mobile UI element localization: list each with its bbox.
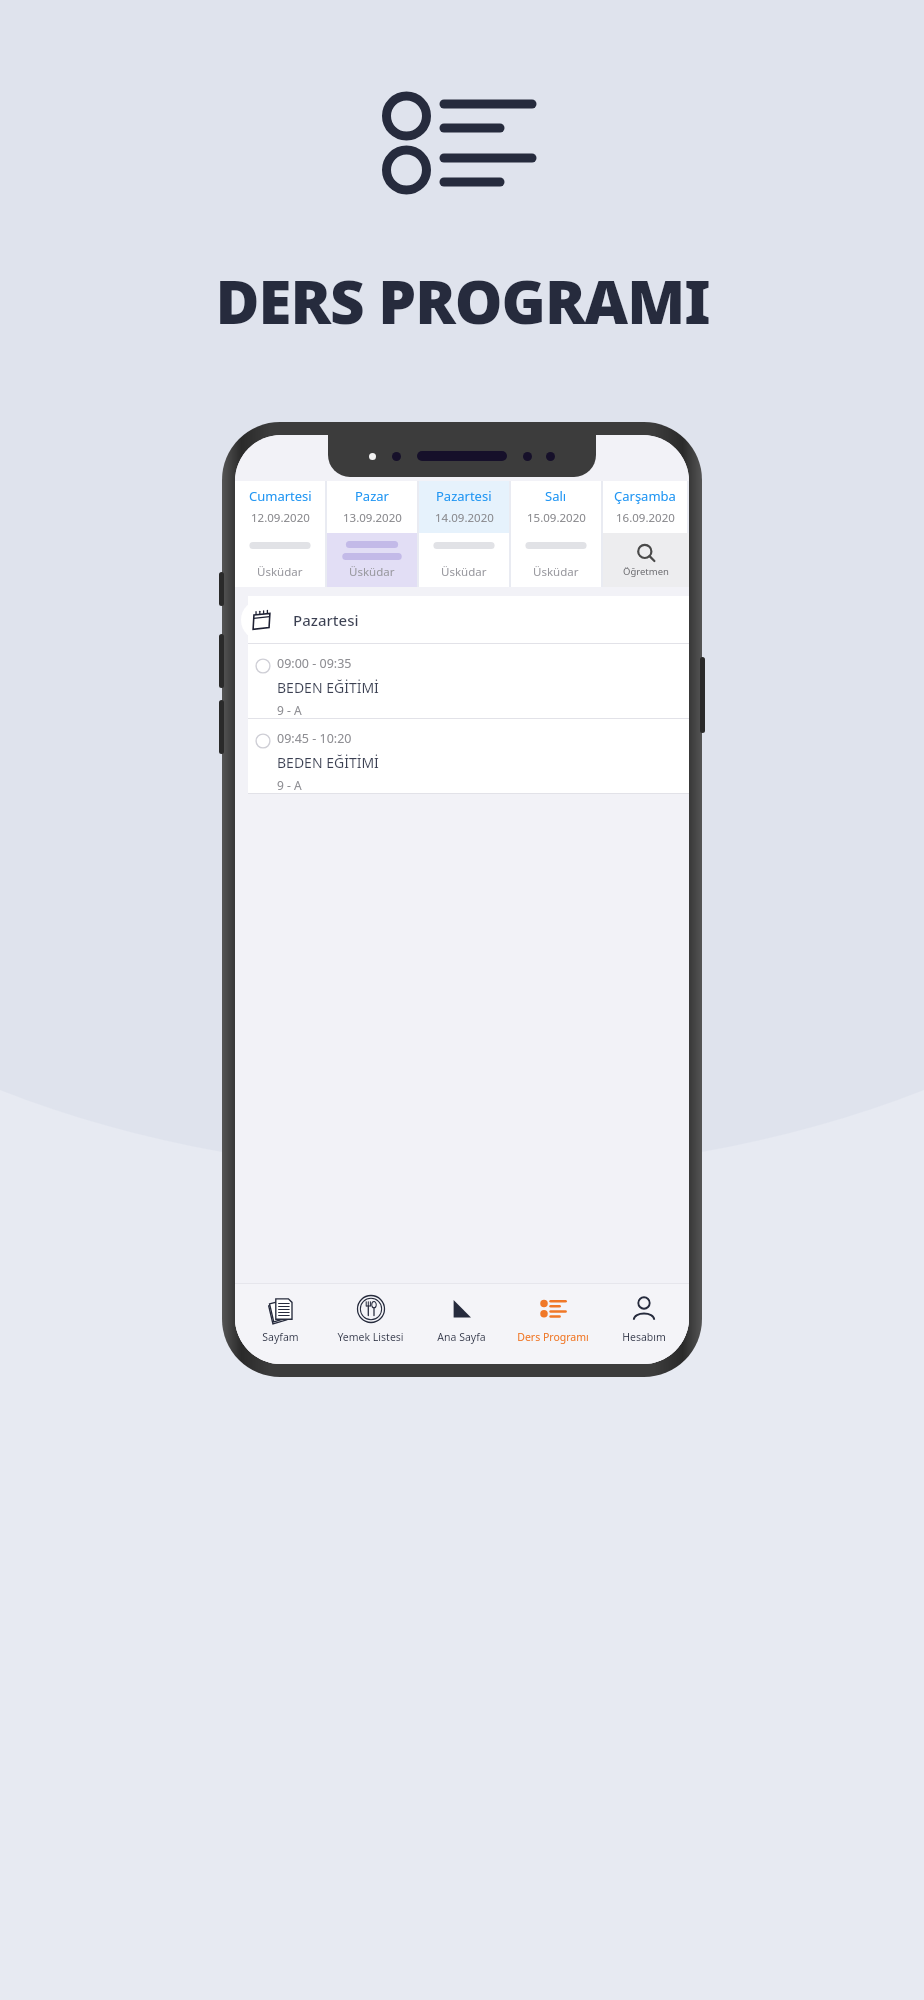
staticText: Cumartesi [249, 487, 312, 505]
staticText: 9 - A [277, 777, 302, 793]
button[interactable]: Yemek Listesi [325, 1284, 416, 1364]
staticText: Pazar [355, 487, 389, 505]
button[interactable]: Üsküdar [327, 533, 417, 587]
staticText: Hesabım [622, 1330, 666, 1344]
button[interactable]: Öğretmen ara [603, 533, 689, 587]
button[interactable]: Ana Sayfa [416, 1284, 507, 1364]
staticText: 15.09.2020 [527, 510, 586, 526]
staticText: DERS PROGRAMI [215, 260, 710, 342]
button[interactable] [248, 596, 689, 644]
button[interactable] [248, 644, 689, 719]
staticText: 09:00 - 09:35 [277, 655, 352, 672]
button[interactable]: Ders Programı [507, 1284, 598, 1364]
button[interactable]: Pazar [327, 481, 417, 533]
staticText: 09:45 - 10:20 [277, 730, 352, 747]
button[interactable]: Sayfam [235, 1284, 325, 1364]
button[interactable]: Üsküdar [235, 533, 325, 587]
button[interactable]: Salı [511, 481, 601, 533]
button[interactable] [248, 719, 689, 794]
staticText: Ana Sayfa [437, 1330, 486, 1344]
staticText: 12.09.2020 [251, 510, 310, 526]
staticText: Öğretmen [623, 565, 669, 578]
staticText: 14.09.2020 [435, 510, 494, 526]
staticText: BEDEN EĞİTİMİ [277, 678, 379, 697]
staticText: Üsküdar [441, 564, 487, 580]
staticText: 16.09.2020 [616, 510, 675, 526]
staticText: Çarşamba [614, 487, 676, 505]
staticText: Üsküdar [257, 564, 303, 580]
button[interactable]: Çarşamba [603, 481, 687, 533]
staticText: Pazartesi [293, 610, 359, 630]
staticText: Sayfam [262, 1330, 299, 1344]
staticText: Üsküdar [349, 564, 395, 580]
staticText: 9 - A [277, 702, 302, 718]
button[interactable]: Pazartesi [419, 481, 509, 533]
staticText: Pazartesi [436, 487, 492, 505]
staticText: Üsküdar [533, 564, 579, 580]
button[interactable]: Cumartesi [235, 481, 325, 533]
staticText: BEDEN EĞİTİMİ [277, 753, 379, 772]
staticText: Ders Programı [517, 1330, 589, 1344]
staticText: Yemek Listesi [337, 1330, 404, 1344]
button[interactable]: Üsküdar [511, 533, 601, 587]
staticText: 13.09.2020 [343, 510, 402, 526]
button[interactable]: Üsküdar [419, 533, 509, 587]
button[interactable]: Hesabım [598, 1284, 689, 1364]
staticText: Salı [545, 487, 567, 505]
